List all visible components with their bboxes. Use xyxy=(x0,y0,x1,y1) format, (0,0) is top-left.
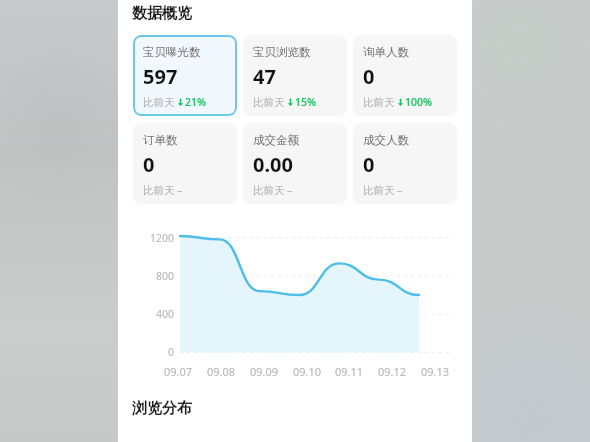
staticText: 09.08 xyxy=(207,364,236,379)
staticText: 09.07 xyxy=(164,364,193,379)
button[interactable]: 成交金额 xyxy=(243,123,347,204)
staticText: 询单人数 xyxy=(363,45,409,59)
staticText: 1200 xyxy=(149,231,174,245)
button[interactable]: 宝贝浏览数 xyxy=(243,35,347,116)
staticText: 比前天 xyxy=(253,96,285,109)
staticText: – xyxy=(397,183,403,197)
staticText: 09.10 xyxy=(293,364,322,379)
staticText: 09.09 xyxy=(250,364,279,379)
staticText: 0 xyxy=(363,151,375,178)
button[interactable]: 宝贝曝光数 xyxy=(133,35,237,116)
staticText: 0.00 xyxy=(253,151,293,178)
staticText: 数据概览 xyxy=(132,4,192,23)
staticText: 比前天 xyxy=(253,184,285,197)
staticText: 0 xyxy=(143,151,155,178)
staticText: 成交金额 xyxy=(253,133,299,147)
button[interactable]: 成交人数 xyxy=(353,123,457,204)
staticText: 100% xyxy=(405,95,432,109)
button[interactable]: 询单人数 xyxy=(353,35,457,116)
staticText: 0 xyxy=(167,345,174,359)
staticText: 比前天 xyxy=(363,96,395,109)
button[interactable]: 订单数 xyxy=(133,123,237,204)
staticText: 成交人数 xyxy=(363,133,409,147)
staticText: 09.12 xyxy=(378,364,407,379)
staticText: 订单数 xyxy=(143,133,178,147)
staticText: 21% xyxy=(185,95,206,109)
staticText: 47 xyxy=(253,63,276,90)
staticText: 比前天 xyxy=(143,96,175,109)
staticText: 800 xyxy=(155,269,174,283)
staticText: – xyxy=(287,183,293,197)
staticText: 比前天 xyxy=(363,184,395,197)
staticText: 400 xyxy=(155,307,174,321)
staticText: 宝贝曝光数 xyxy=(143,45,201,59)
staticText: 比前天 xyxy=(143,184,175,197)
staticText: 0 xyxy=(363,63,375,90)
staticText: 09.13 xyxy=(421,364,450,379)
staticText: 15% xyxy=(295,95,316,109)
staticText: 宝贝浏览数 xyxy=(253,45,311,59)
staticText: 浏览分布 xyxy=(132,399,192,418)
staticText: 09.11 xyxy=(335,364,364,379)
staticText: – xyxy=(177,183,183,197)
staticText: 597 xyxy=(143,63,178,90)
